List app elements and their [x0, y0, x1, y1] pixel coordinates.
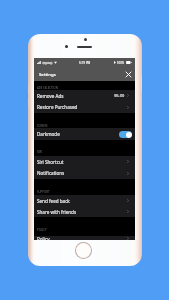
staticText: SCREEN	[37, 124, 48, 128]
staticText: 中国移动	[42, 61, 53, 64]
staticText: Siri Shortcut	[37, 159, 64, 165]
staticText: SIRI	[37, 150, 43, 154]
button[interactable]: Share with friends	[34, 206, 135, 217]
button[interactable]: Siri Shortcut	[34, 156, 135, 167]
button[interactable]: Policy	[34, 236, 135, 240]
staticText: SUPPORT	[37, 190, 50, 194]
button[interactable]: Restore Purchased	[34, 101, 135, 113]
staticText: Darkmode	[37, 131, 60, 137]
staticText: Notifications	[37, 170, 65, 176]
button[interactable]: Notifications	[34, 167, 135, 179]
button[interactable]: Darkmode	[34, 128, 135, 140]
staticText: Send feed back	[37, 198, 70, 204]
staticText: Settings	[39, 71, 56, 77]
staticText: Remove Ads	[37, 93, 64, 99]
staticText: 5:19 PM	[79, 61, 91, 65]
button[interactable]: Close	[124, 70, 132, 78]
staticText: Restore Purchased	[37, 104, 78, 110]
button[interactable]: Remove Ads	[34, 90, 135, 101]
staticText: Policy	[37, 236, 50, 240]
staticText: Share with friends	[37, 209, 77, 215]
staticText: ¥6.00	[114, 93, 125, 98]
staticText: POLICY	[37, 228, 47, 232]
staticText: 100%	[117, 61, 125, 65]
staticText: ADS SELECTION	[37, 86, 58, 90]
button[interactable]: Send feed back	[34, 195, 135, 206]
